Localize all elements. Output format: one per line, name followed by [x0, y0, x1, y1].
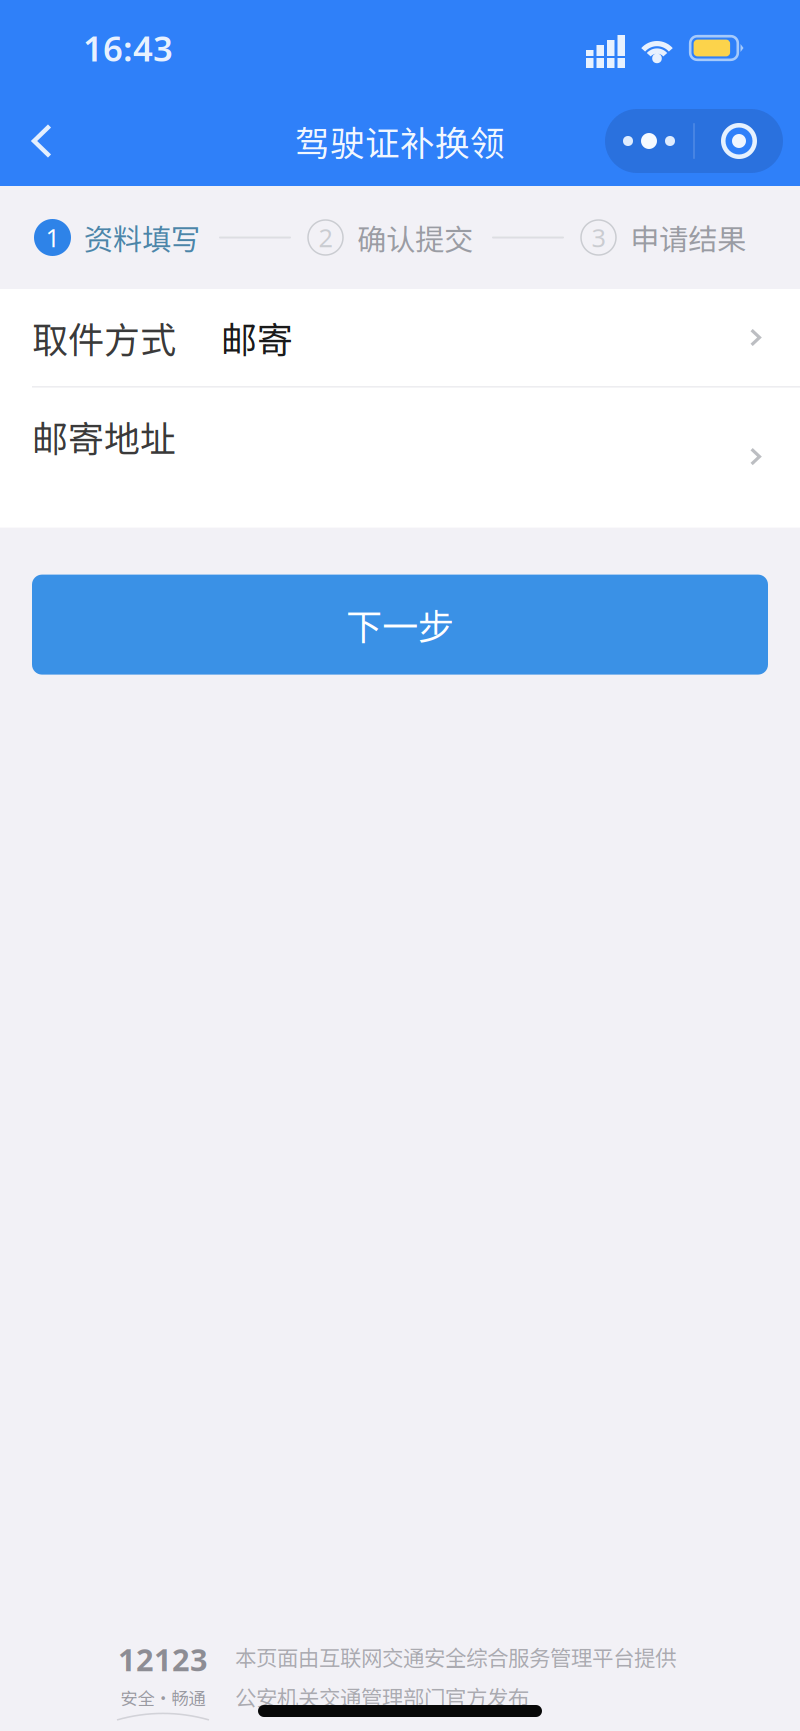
- staticText: 本页面由互联网交通安全综合服务管理平台提供: [235, 1641, 676, 1672]
- staticText: 3: [591, 221, 605, 254]
- staticText: 申请结果: [630, 216, 746, 259]
- staticText: 驾驶证补换领: [295, 116, 505, 166]
- staticText: 12123: [118, 1639, 208, 1680]
- staticText: 邮寄: [221, 311, 293, 363]
- staticText: 1: [45, 221, 59, 254]
- button[interactable]: 更多: [605, 109, 783, 173]
- button[interactable]: 下一步: [32, 575, 768, 675]
- staticText: 16:43: [83, 25, 173, 71]
- staticText: 安全·畅通: [120, 1685, 205, 1710]
- staticText: 公安机关交通管理部门官方发布: [235, 1681, 529, 1712]
- button[interactable]: 取件方式: [0, 289, 800, 386]
- button[interactable]: 返回: [11, 96, 73, 186]
- staticText: 资料填写: [84, 216, 200, 259]
- button[interactable]: 邮寄地址: [0, 388, 800, 528]
- staticText: 2: [318, 221, 332, 254]
- staticText: 邮寄地址: [32, 410, 176, 463]
- staticText: 下一步: [346, 598, 454, 651]
- staticText: 取件方式: [32, 311, 176, 363]
- staticText: 确认提交: [357, 216, 473, 259]
